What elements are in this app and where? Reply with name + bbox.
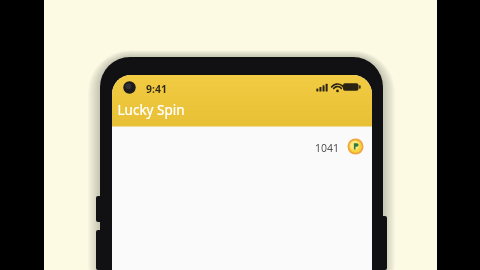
button[interactable]: Coin balance 1041	[308, 135, 366, 158]
button[interactable]: Lucky Spin title bar	[112, 94, 372, 126]
